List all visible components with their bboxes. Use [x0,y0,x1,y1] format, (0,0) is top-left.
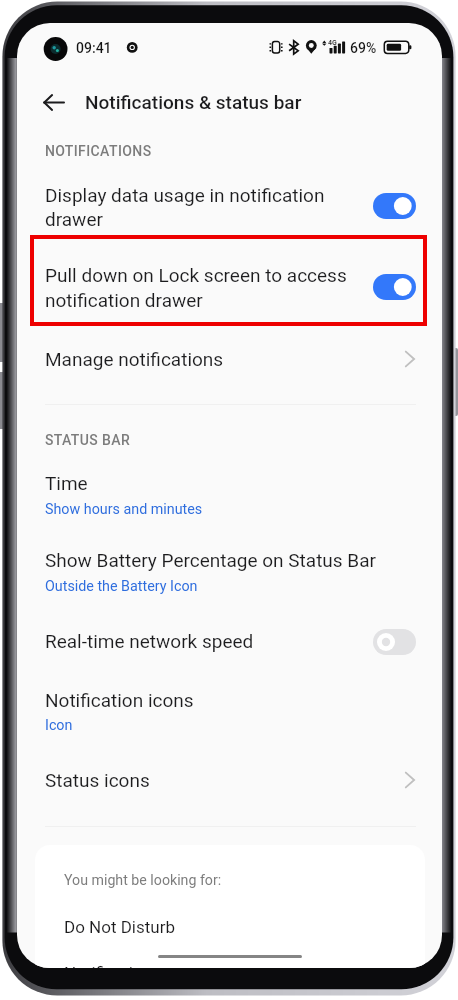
staticText: Do Not Disturb [64,917,175,937]
button[interactable] [17,329,442,392]
staticText: NOTIFICATIONS [45,143,152,159]
button[interactable]: Real-time network speed [373,629,416,655]
button[interactable] [35,955,425,968]
staticText: STATUS BAR [45,432,131,448]
staticText: Icon [45,717,73,734]
staticText: 4G [328,39,337,47]
staticText: Notification icons [45,689,194,711]
button[interactable] [17,611,442,672]
button[interactable] [17,535,442,611]
staticText: 69% [350,40,377,56]
button[interactable] [17,748,442,809]
staticText: Status icons [45,769,150,791]
staticText: Time [45,472,88,494]
staticText: You might be looking for: [64,872,222,889]
staticText: Show hours and minutes [45,501,203,518]
staticText: Outside the Battery Icon [45,578,198,595]
button[interactable] [35,909,425,955]
button[interactable]: Back [37,80,81,124]
button[interactable] [17,168,442,249]
staticText: Pull down on Lock screen to access [45,264,347,286]
staticText: Notifications & status bar [85,91,302,113]
staticText: 09:41 [76,40,112,56]
button[interactable]: Display data usage in notification drawe… [373,193,416,219]
staticText: Manage notifications [45,348,224,370]
button[interactable] [17,672,442,748]
button[interactable] [17,249,442,330]
staticText: Notification management [64,963,257,968]
button[interactable] [17,459,442,535]
button[interactable]: Pull down on Lock screen to access notif… [373,274,416,300]
staticText: Real-time network speed [45,630,254,652]
staticText: notification drawer [45,289,203,311]
staticText: drawer [45,208,103,230]
staticText: Display data usage in notification [45,184,325,206]
staticText: Show Battery Percentage on Status Bar [45,549,376,571]
